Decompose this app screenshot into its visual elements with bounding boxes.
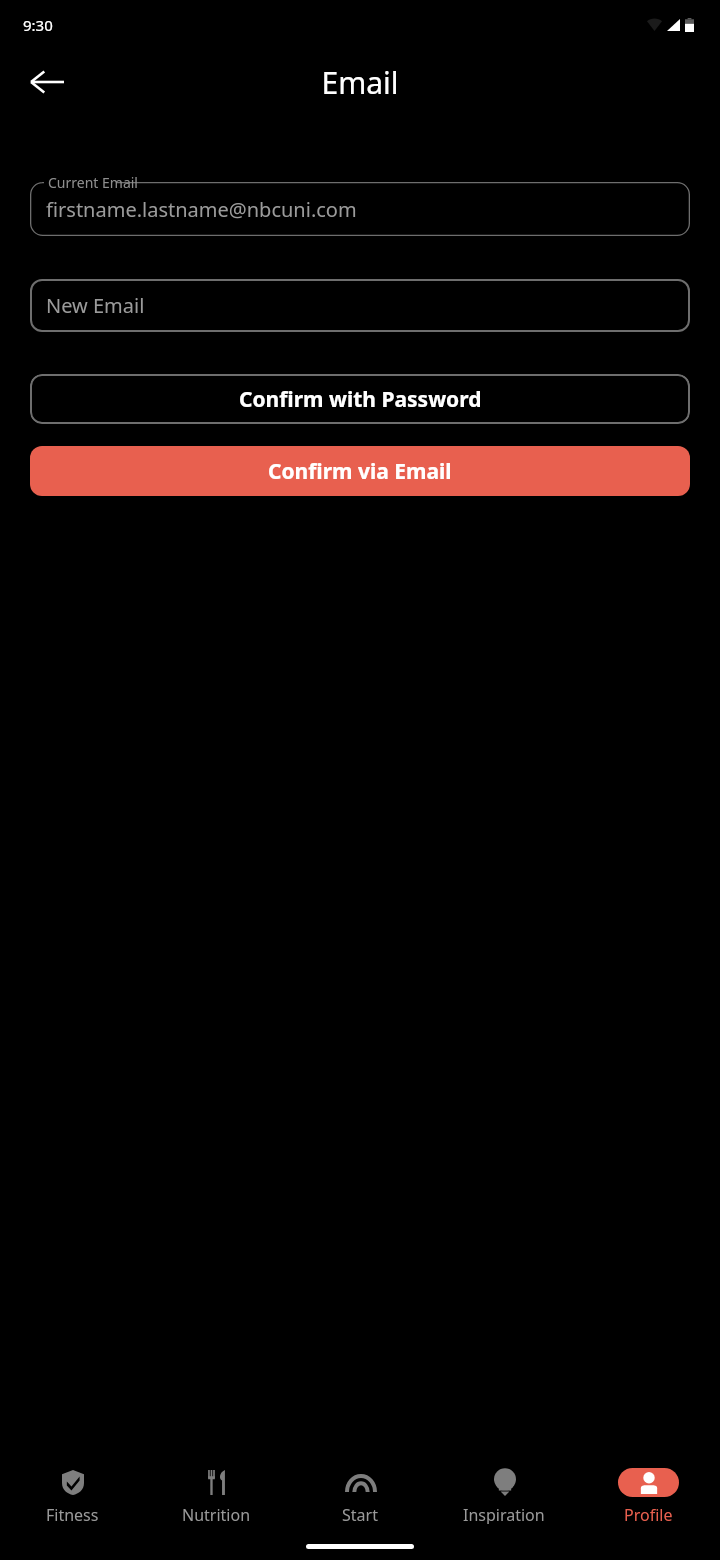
- button[interactable]: Back: [22, 57, 72, 107]
- staticText: Email: [321, 62, 399, 103]
- staticText: Start: [342, 1504, 378, 1524]
- staticText: Nutrition: [182, 1504, 251, 1524]
- staticText: Current Email: [48, 173, 138, 192]
- staticText: Fitness: [46, 1504, 99, 1524]
- staticText: Confirm via Email: [268, 457, 452, 486]
- button[interactable]: New Email: [30, 279, 690, 332]
- staticText: Profile: [624, 1504, 673, 1524]
- button[interactable]: Profile: [576, 1462, 720, 1524]
- staticText: 9:30: [23, 15, 53, 35]
- button[interactable]: Nutrition: [144, 1462, 288, 1524]
- button[interactable]: Fitness: [0, 1462, 144, 1524]
- staticText: Inspiration: [463, 1504, 545, 1524]
- staticText: Confirm with Password: [239, 385, 482, 414]
- button[interactable]: Start: [288, 1462, 432, 1524]
- button[interactable]: Inspiration: [432, 1462, 576, 1524]
- button[interactable]: Confirm via Email: [30, 446, 690, 496]
- staticText: firstname.lastname@nbcuni.com: [46, 196, 357, 223]
- button[interactable]: Confirm with Password: [30, 374, 690, 424]
- staticText: New Email: [46, 292, 145, 319]
- button[interactable]: Current Email: [30, 182, 690, 236]
